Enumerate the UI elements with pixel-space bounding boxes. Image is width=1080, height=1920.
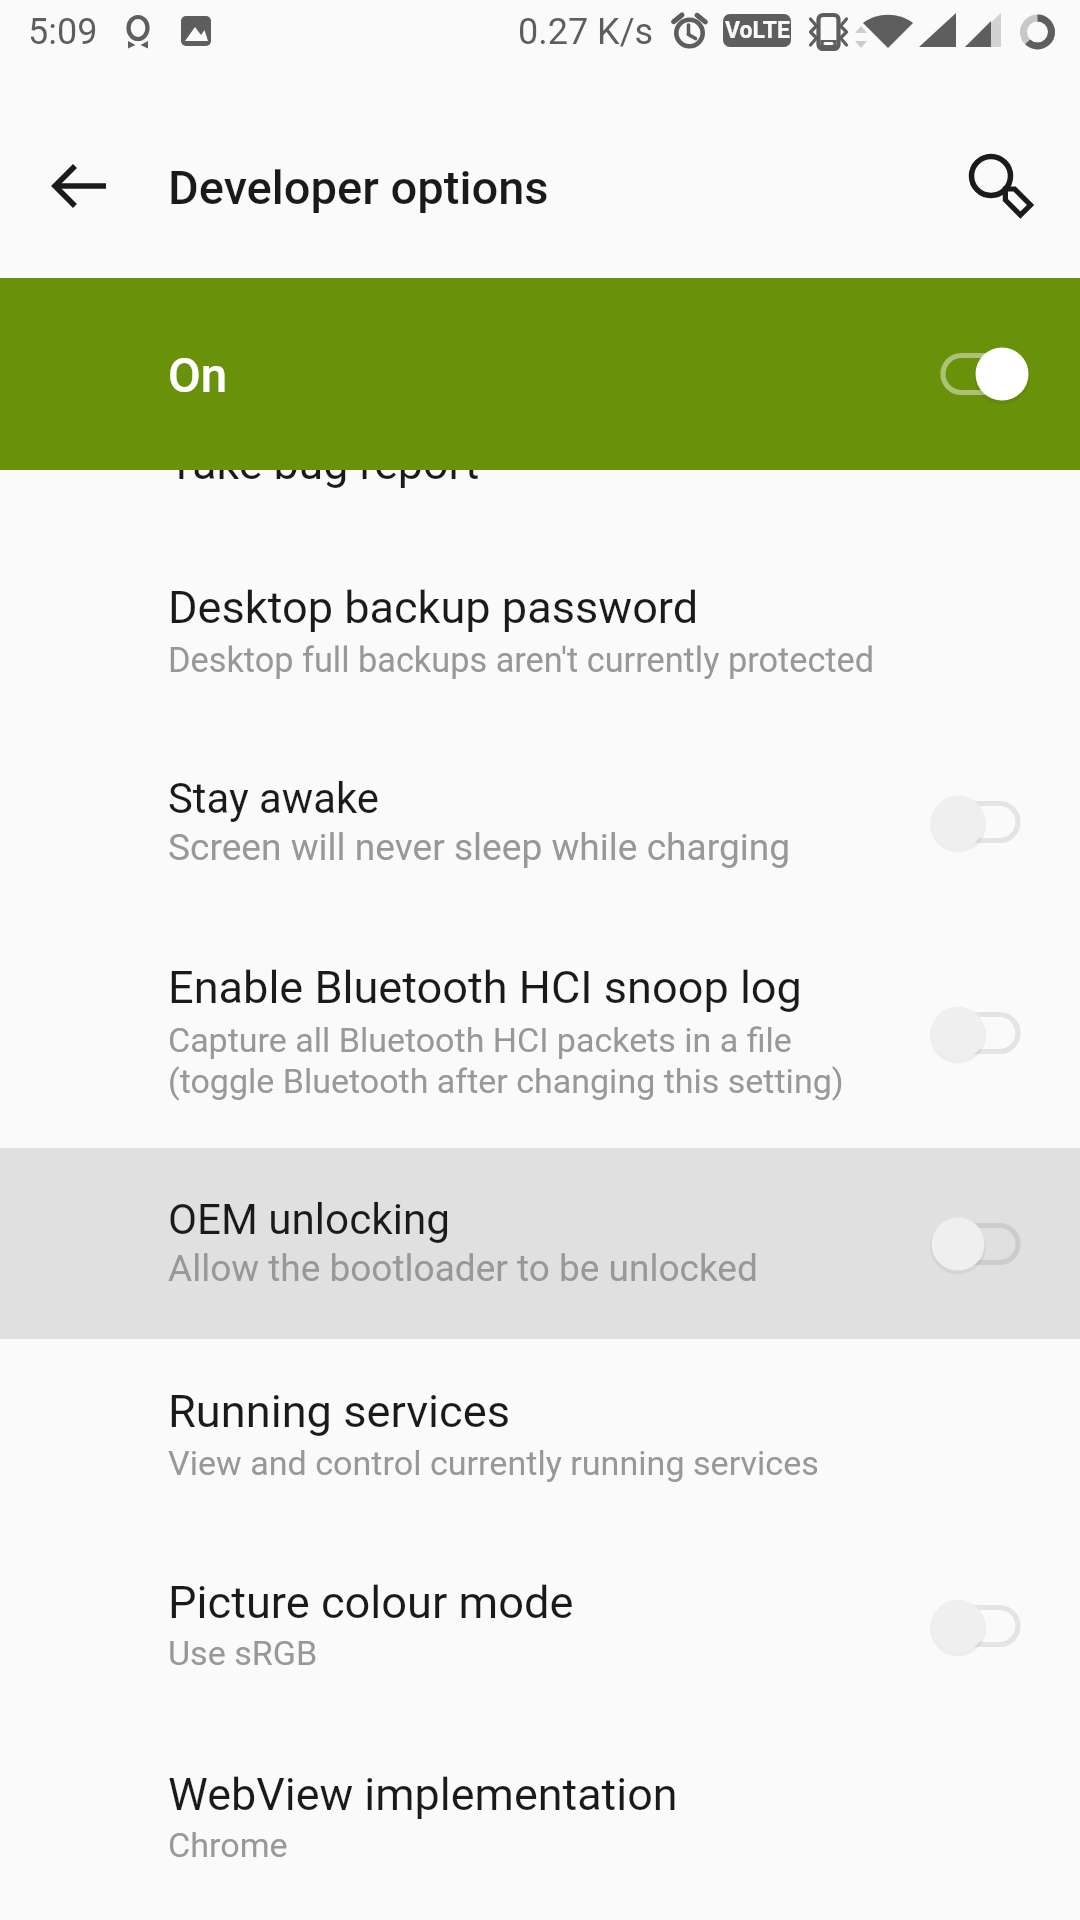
- staticText: Screen will never sleep while charging: [168, 826, 791, 869]
- button[interactable]: Desktop backup password: [0, 535, 1080, 726]
- button[interactable]: Switch off: [920, 1578, 1080, 1674]
- button[interactable]: Switch off: [920, 1196, 1080, 1292]
- staticText: 5:09: [28, 11, 98, 53]
- staticText: VoLTE: [725, 17, 790, 44]
- button[interactable]: Picture colour mode: [0, 1530, 1080, 1721]
- staticText: Stay awake: [168, 774, 379, 823]
- staticText: Developer options: [168, 160, 549, 215]
- button[interactable]: Enable Bluetooth HCI snoop log: [0, 917, 1080, 1148]
- staticText: Capture all Bluetooth HCI packets in a f…: [168, 1020, 792, 1060]
- staticText: Enable Bluetooth HCI snoop log: [168, 961, 802, 1014]
- staticText: View and control currently running servi…: [168, 1443, 819, 1483]
- button[interactable]: Search: [946, 120, 1054, 228]
- button[interactable]: Switch off: [920, 774, 1080, 870]
- button[interactable]: OEM unlocking: [0, 1148, 1080, 1339]
- button[interactable]: WebView implementation: [0, 1721, 1080, 1912]
- staticText: Take bug report: [168, 438, 480, 490]
- staticText: 0.27 K/s: [518, 11, 654, 53]
- staticText: On: [168, 348, 228, 404]
- button[interactable]: Switch on: [920, 326, 1080, 422]
- staticText: Allow the bootloader to be unlocked: [168, 1247, 758, 1290]
- button[interactable]: On: [0, 278, 1080, 470]
- staticText: OEM unlocking: [168, 1195, 450, 1244]
- staticText: (toggle Bluetooth after changing this se…: [168, 1061, 844, 1101]
- button[interactable]: Switch off: [920, 985, 1080, 1081]
- staticText: WebView implementation: [168, 1768, 678, 1821]
- staticText: Running services: [168, 1385, 510, 1438]
- button[interactable]: Take bug report: [0, 408, 1080, 535]
- staticText: Desktop backup password: [168, 581, 699, 634]
- staticText: Use sRGB: [168, 1633, 318, 1673]
- button[interactable]: Running services: [0, 1339, 1080, 1530]
- button[interactable]: Navigate up: [26, 120, 134, 228]
- staticText: Desktop full backups aren't currently pr…: [168, 640, 875, 680]
- button[interactable]: Stay awake: [0, 726, 1080, 917]
- staticText: Chrome: [168, 1825, 288, 1865]
- staticText: Picture colour mode: [168, 1576, 574, 1629]
